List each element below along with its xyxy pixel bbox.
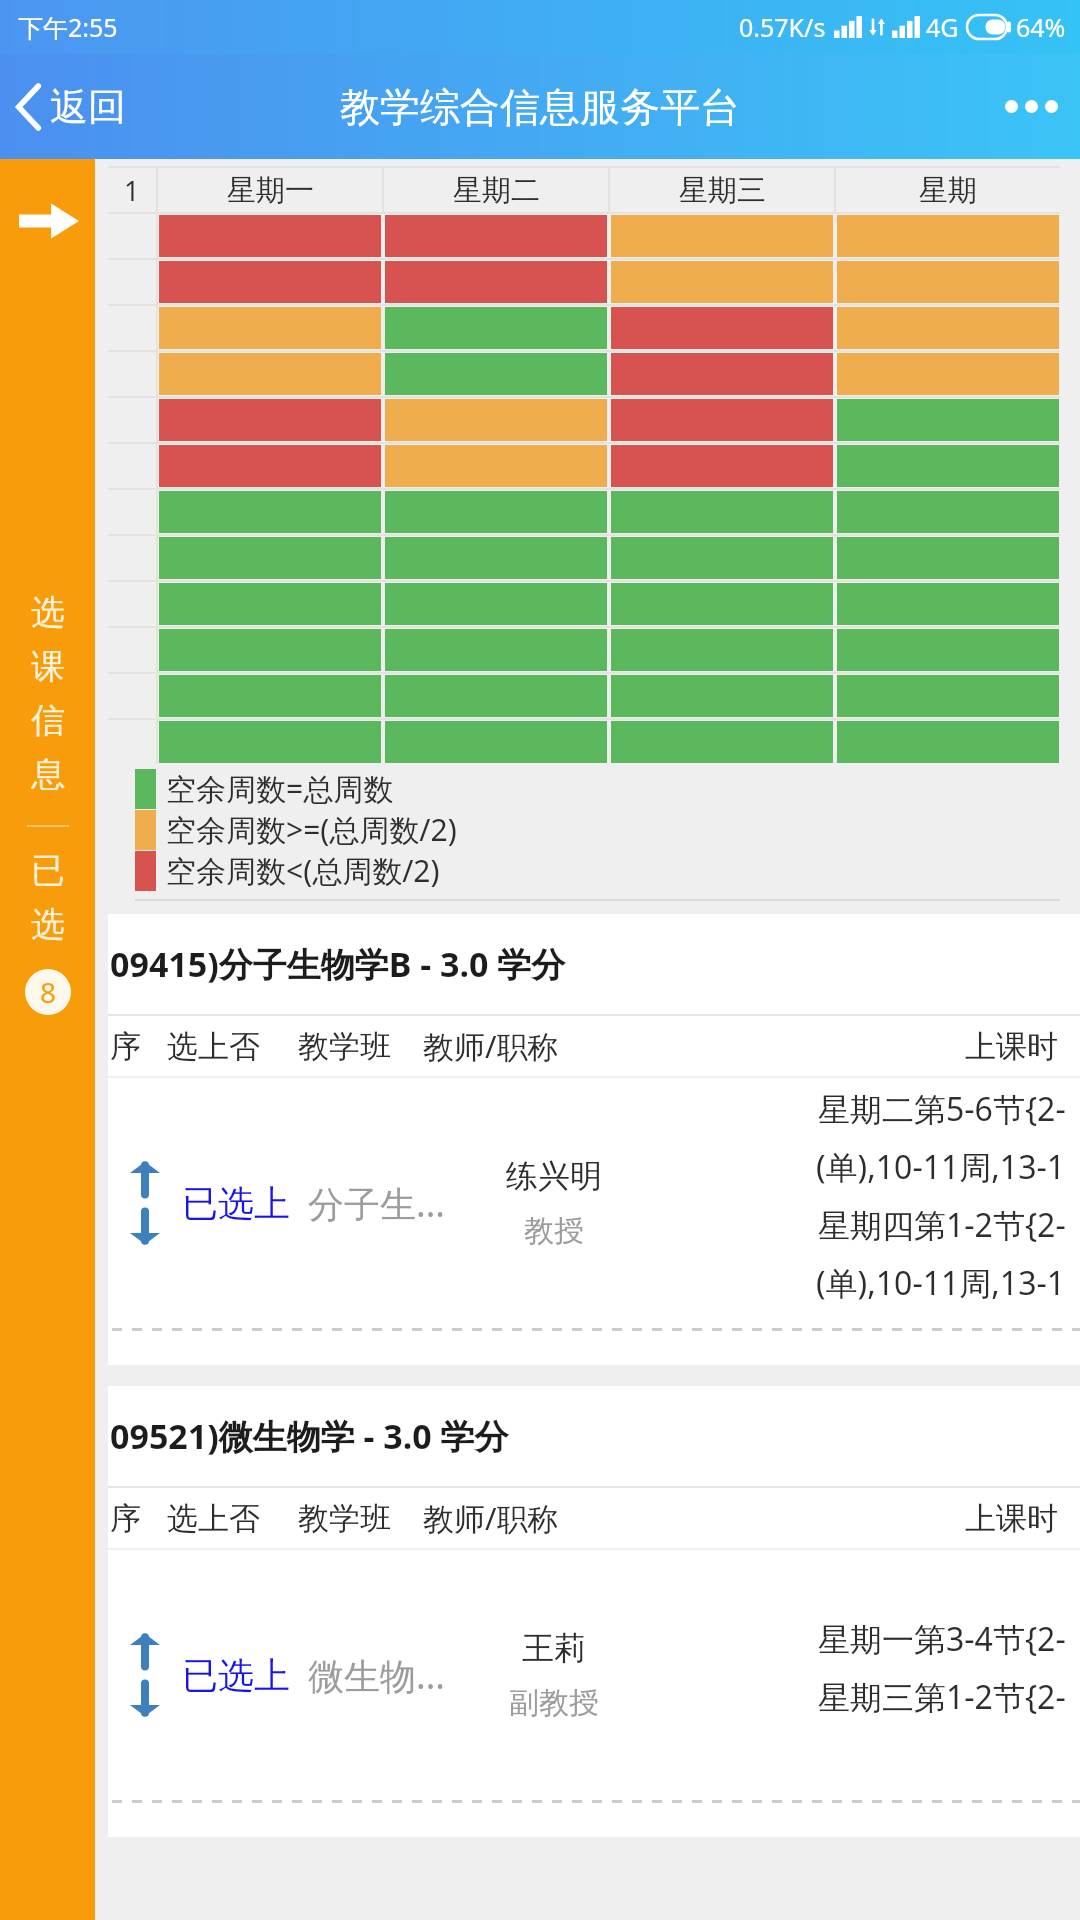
staticText: 星期二 <box>453 172 540 209</box>
staticText: 序 <box>110 1027 141 1066</box>
staticText: 星期三第1-2节{2- <box>818 1675 1066 1719</box>
staticText: (单),10-11周,13-1 <box>816 1145 1066 1189</box>
staticText: 星期二第5-6节{2- <box>818 1087 1066 1131</box>
staticText: 星期三 <box>679 172 766 209</box>
staticText: 64% <box>1016 10 1066 44</box>
staticText: 空余周数<(总周数/2) <box>166 850 440 891</box>
staticText: 09415)分子生物学B - 3.0 学分 <box>110 941 566 987</box>
staticText: 上课时 <box>965 1027 1058 1066</box>
staticText: 王莉 <box>522 1628 586 1668</box>
other: Sort <box>108 1550 182 1800</box>
button[interactable]: Sort <box>108 1550 1080 1800</box>
button[interactable]: More options <box>983 80 1080 133</box>
staticText: 0.57K/s <box>739 10 826 44</box>
staticText: 选上否 <box>167 1027 260 1066</box>
staticText: 星期 <box>919 172 977 209</box>
staticText: 教师/职称 <box>423 1497 559 1539</box>
staticText: 星期一第3-4节{2- <box>818 1617 1066 1661</box>
staticText: 已 <box>31 849 65 892</box>
staticText: 星期四第1-2节{2- <box>818 1203 1066 1247</box>
staticText: 09521)微生物学 - 3.0 学分 <box>110 1413 509 1459</box>
staticText: 选 <box>31 591 65 634</box>
staticText: 分子生... <box>308 1179 445 1228</box>
staticText: 空余周数>=(总周数/2) <box>166 809 457 850</box>
staticText: 息 <box>31 753 65 796</box>
staticText: 返回 <box>50 83 126 131</box>
staticText: 已选上 <box>182 1181 290 1226</box>
staticText: 选 <box>31 903 65 946</box>
staticText: 练兴明 <box>506 1156 602 1196</box>
staticText: 信 <box>31 699 65 742</box>
button[interactable]: 返回 <box>0 73 144 141</box>
staticText: 教学综合信息服务平台 <box>340 82 740 132</box>
staticText: 序 <box>110 1499 141 1538</box>
staticText: 8 <box>40 973 57 1011</box>
staticText: 微生物... <box>308 1651 445 1700</box>
staticText: 下午2:55 <box>18 10 118 44</box>
staticText: 副教授 <box>509 1684 599 1722</box>
staticText: 教授 <box>524 1212 584 1250</box>
staticText: 课 <box>31 645 65 688</box>
staticText: 教学班 <box>298 1499 391 1538</box>
staticText: 教学班 <box>298 1027 391 1066</box>
staticText: 空余周数=总周数 <box>166 768 394 809</box>
button[interactable]: Sort <box>108 1078 1080 1328</box>
staticText: (单),10-11周,13-1 <box>816 1261 1066 1305</box>
staticText: 星期一 <box>227 172 314 209</box>
staticText: 选上否 <box>167 1499 260 1538</box>
staticText: 1 <box>124 172 140 209</box>
staticText: 4G <box>926 10 959 44</box>
staticText: 上课时 <box>965 1499 1058 1538</box>
button[interactable]: 选课信息 已选 8 <box>0 159 95 1920</box>
other: Sort <box>108 1078 182 1328</box>
